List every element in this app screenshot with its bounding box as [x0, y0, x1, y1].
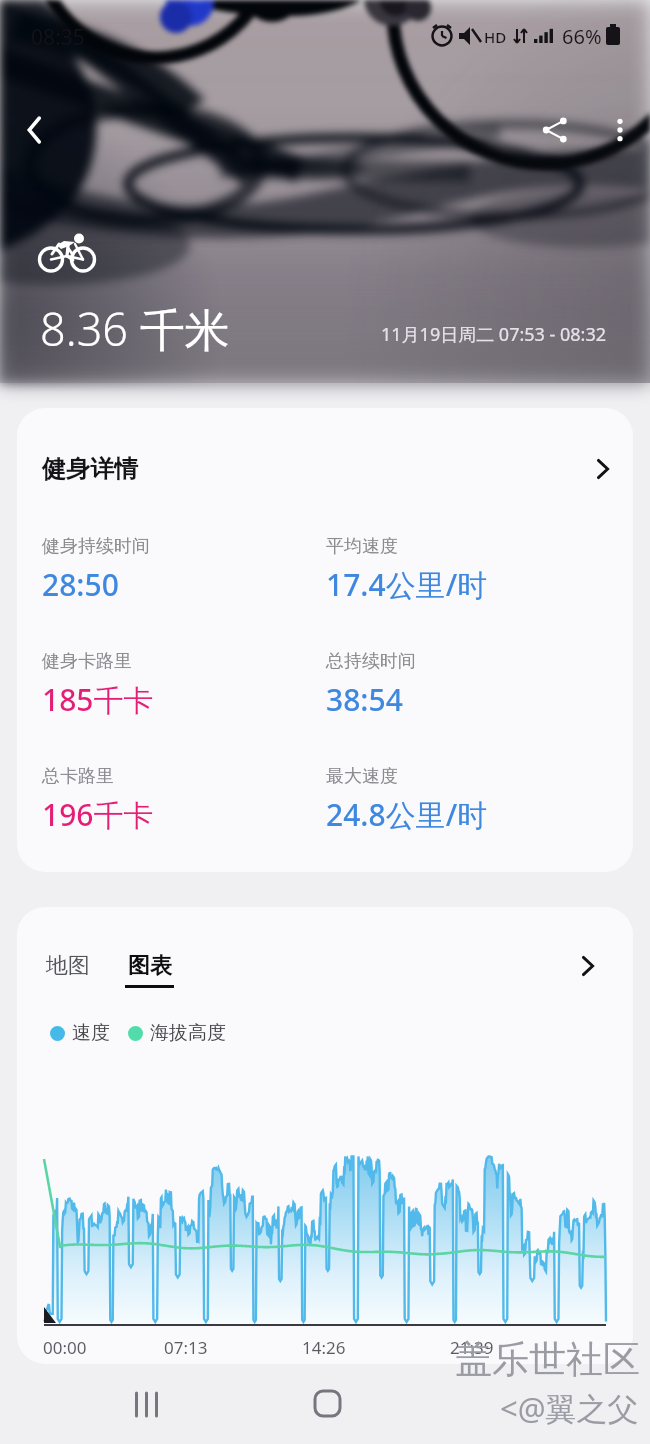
staticText: 07:13	[164, 1336, 208, 1359]
staticText: 28:50	[42, 564, 119, 605]
staticText: 平均速度	[326, 535, 398, 558]
button[interactable]: Home	[291, 1371, 363, 1435]
button[interactable]: 地图	[35, 941, 101, 991]
staticText: 最大速度	[326, 765, 398, 788]
staticText: 健身卡路里	[42, 650, 132, 673]
staticText: 00:00	[43, 1336, 87, 1359]
button[interactable]: Open chart	[572, 946, 604, 986]
staticText: 11月19日周二 07:53 - 08:32	[381, 322, 607, 347]
staticText: 总卡路里	[42, 765, 114, 788]
staticText: <@翼之父	[500, 1387, 639, 1429]
staticText: 健身持续时间	[42, 535, 150, 558]
button[interactable]: 健身详情	[17, 408, 633, 530]
staticText: 66%	[562, 23, 602, 50]
staticText: 图表	[128, 952, 172, 980]
staticText: 总持续时间	[326, 650, 416, 673]
staticText: 24.8公里/时	[326, 794, 488, 835]
button[interactable]: Back	[470, 1371, 542, 1435]
staticText: 17.4公里/时	[326, 564, 488, 605]
button[interactable]: Back	[0, 95, 70, 165]
staticText: 地图	[46, 952, 90, 980]
staticText: 38:54	[326, 679, 403, 720]
button[interactable]: Share	[520, 95, 590, 165]
staticText: 海拔高度	[150, 1021, 226, 1045]
staticText: 08:35	[31, 23, 85, 52]
button[interactable]: More options	[590, 100, 650, 160]
staticText: 21:39	[450, 1336, 494, 1359]
staticText: 196千卡	[42, 794, 154, 835]
staticText: 健身详情	[42, 454, 138, 484]
staticText: 盖乐世社区	[455, 1336, 640, 1383]
staticText: 185千卡	[42, 679, 154, 720]
staticText: 速度	[72, 1021, 110, 1045]
button[interactable]: 图表	[114, 941, 185, 999]
staticText: HD	[484, 27, 507, 47]
staticText: 8.36 千米	[40, 298, 230, 359]
button[interactable]: Recent apps	[110, 1372, 182, 1436]
staticText: 14:26	[302, 1336, 346, 1359]
